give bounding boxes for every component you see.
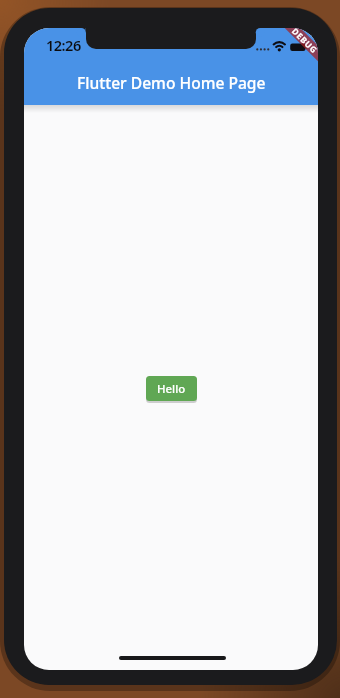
- staticText: 12:26: [46, 35, 81, 52]
- button[interactable]: Hello: [146, 376, 197, 401]
- staticText: DEBUG: [290, 28, 318, 56]
- staticText: Flutter Demo Home Page: [77, 72, 266, 93]
- staticText: Hello: [157, 381, 186, 397]
